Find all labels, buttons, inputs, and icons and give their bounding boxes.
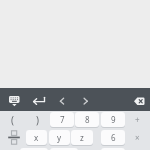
button[interactable]: ) bbox=[26, 112, 49, 127]
button[interactable]: × bbox=[126, 130, 149, 145]
staticText: 8 bbox=[85, 114, 90, 125]
button[interactable]: z bbox=[71, 130, 93, 145]
staticText: ( bbox=[11, 113, 14, 127]
button[interactable]: x bbox=[26, 130, 47, 145]
button[interactable]: 9 bbox=[101, 112, 125, 127]
button[interactable] bbox=[1, 130, 24, 145]
button[interactable] bbox=[101, 148, 125, 150]
staticText: ) bbox=[36, 113, 39, 127]
button[interactable]: 7 bbox=[50, 112, 74, 127]
button[interactable] bbox=[129, 90, 150, 109]
button[interactable] bbox=[76, 90, 96, 109]
button[interactable]: 6 bbox=[101, 130, 125, 145]
button[interactable]: y bbox=[49, 130, 70, 145]
button[interactable] bbox=[20, 148, 48, 150]
staticText: × bbox=[135, 132, 140, 143]
button[interactable] bbox=[52, 90, 72, 109]
button[interactable] bbox=[29, 90, 49, 109]
staticText: x bbox=[34, 132, 39, 143]
button[interactable] bbox=[4, 90, 25, 109]
staticText: + bbox=[135, 114, 140, 125]
staticText: y bbox=[57, 132, 62, 143]
button[interactable]: 8 bbox=[75, 112, 99, 127]
staticText: 7 bbox=[60, 114, 65, 125]
staticText: z bbox=[80, 132, 84, 143]
button[interactable] bbox=[50, 148, 78, 150]
staticText: 9 bbox=[111, 114, 116, 125]
staticText: 6 bbox=[111, 132, 116, 143]
button[interactable]: ( bbox=[1, 112, 24, 127]
button[interactable]: + bbox=[126, 112, 149, 127]
